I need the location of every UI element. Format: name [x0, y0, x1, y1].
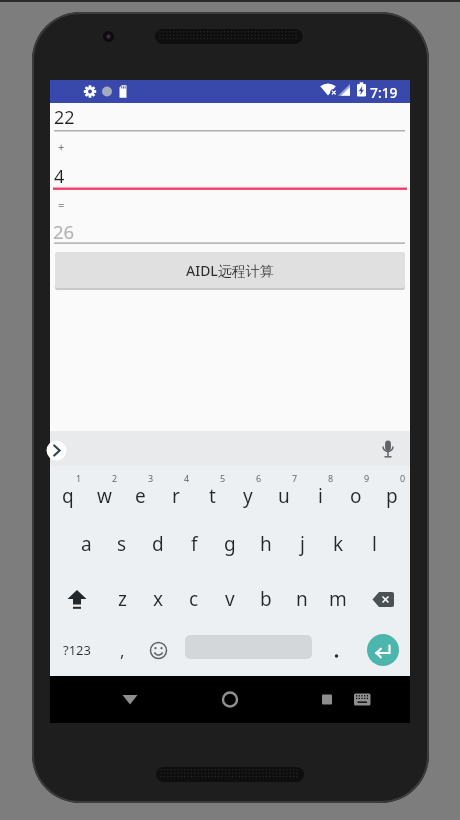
staticText: 6 [256, 472, 262, 484]
button[interactable]: d [140, 518, 176, 570]
staticText: i [318, 483, 323, 509]
staticText: r [172, 483, 180, 509]
staticText: h [260, 531, 272, 557]
staticText: u [278, 483, 290, 509]
staticText: a [81, 531, 92, 557]
button[interactable] [140, 624, 176, 676]
button[interactable]: j [284, 518, 320, 570]
staticText: 1 [76, 472, 82, 484]
staticText: z [118, 586, 127, 612]
button[interactable]: k [320, 518, 356, 570]
button[interactable]: n [284, 573, 320, 625]
button[interactable] [312, 684, 342, 714]
button[interactable]: v [212, 573, 248, 625]
staticText: 4 [54, 164, 65, 189]
button[interactable] [367, 634, 399, 666]
button[interactable] [50, 439, 68, 461]
staticText: c [189, 586, 199, 612]
button[interactable]: 5 [194, 470, 230, 522]
staticText: x [153, 586, 164, 612]
staticText: l [372, 531, 377, 557]
button[interactable]: b [248, 573, 284, 625]
button[interactable]: 1 [50, 470, 86, 522]
staticText: y [243, 483, 253, 509]
button[interactable]: z [104, 573, 140, 625]
button[interactable] [215, 684, 245, 714]
staticText: 3 [148, 472, 154, 484]
staticText: j [300, 531, 305, 557]
staticText: 9 [364, 472, 370, 484]
staticText: n [296, 586, 308, 612]
staticText: 4 [184, 472, 190, 484]
button[interactable]: , [104, 624, 140, 676]
button[interactable]: 8 [302, 470, 338, 522]
button[interactable] [115, 684, 145, 714]
button[interactable]: x [140, 573, 176, 625]
staticText: 7 [292, 472, 298, 484]
button[interactable]: 6 [230, 470, 266, 522]
staticText: v [225, 586, 235, 612]
button[interactable]: f [176, 518, 212, 570]
button[interactable]: h [248, 518, 284, 570]
staticText: = [58, 197, 65, 212]
staticText: 7:19 [370, 83, 398, 102]
button[interactable] [356, 573, 410, 625]
staticText: 2 [112, 472, 118, 484]
button[interactable]: 4 [158, 470, 194, 522]
staticText: b [260, 586, 272, 612]
staticText: + [58, 139, 65, 154]
staticText: d [152, 531, 164, 557]
staticText: 26 [53, 219, 75, 244]
button[interactable] [50, 573, 104, 625]
staticText: k [333, 531, 344, 557]
staticText: w [97, 483, 112, 509]
staticText: 0 [400, 472, 406, 484]
button[interactable]: g [212, 518, 248, 570]
staticText: , [120, 639, 125, 662]
staticText: e [135, 483, 146, 509]
staticText: t [209, 483, 216, 509]
button[interactable]: c [176, 573, 212, 625]
button[interactable] [347, 684, 377, 714]
button[interactable]: ?123 [50, 624, 104, 676]
button[interactable]: AIDL远程计算 [55, 252, 405, 288]
button[interactable]: 0 [374, 470, 410, 522]
button[interactable]: 9 [338, 470, 374, 522]
button[interactable]: m [320, 573, 356, 625]
staticText: AIDL远程计算 [186, 261, 274, 280]
button[interactable]: s [104, 518, 140, 570]
staticText: f [191, 531, 198, 557]
staticText: s [117, 531, 127, 557]
staticText: p [386, 483, 398, 509]
staticText: q [62, 483, 74, 509]
button[interactable]: l [356, 518, 392, 570]
button[interactable]: 2 [86, 470, 122, 522]
button[interactable]: 3 [122, 470, 158, 522]
button[interactable]: a [68, 518, 104, 570]
staticText: 22 [54, 105, 75, 130]
staticText: 8 [328, 472, 334, 484]
button[interactable]: 7 [266, 470, 302, 522]
staticText: g [224, 531, 236, 557]
staticText: o [350, 483, 362, 509]
staticText: m [329, 586, 347, 612]
staticText: ?123 [63, 641, 91, 659]
staticText: 5 [220, 472, 226, 484]
